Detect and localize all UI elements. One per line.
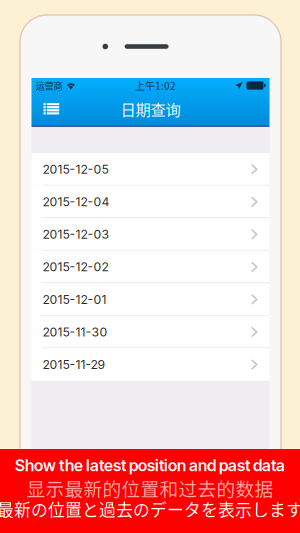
button[interactable]: 2015-12-01: [31, 283, 269, 316]
staticText: 显示最新的位置和过去的数据: [26, 474, 273, 501]
staticText: 日期查询: [120, 98, 180, 120]
staticText: 2015-11-30: [42, 324, 107, 339]
staticText: Show the latest position and past data: [15, 456, 285, 475]
button[interactable]: 2015-12-03: [31, 218, 269, 251]
staticText: 运营商: [35, 79, 62, 92]
button[interactable]: 2015-11-30: [31, 316, 269, 348]
button[interactable]: Menu: [31, 93, 59, 124]
staticText: 2015-12-02: [42, 259, 108, 274]
staticText: 2015-11-29: [42, 357, 105, 372]
staticText: 2015-12-01: [42, 292, 106, 307]
button[interactable]: 2015-12-02: [31, 251, 269, 283]
button[interactable]: 2015-12-04: [31, 185, 269, 218]
staticText: 2015-12-04: [42, 194, 109, 209]
button[interactable]: 2015-12-05: [31, 153, 269, 185]
staticText: 上午1:02: [135, 78, 176, 93]
staticText: 2015-12-03: [42, 227, 109, 242]
button[interactable]: 2015-11-29: [31, 348, 269, 381]
staticText: 2015-12-05: [42, 162, 108, 177]
staticText: 最新の位置と過去のデータを表示します: [0, 497, 300, 521]
